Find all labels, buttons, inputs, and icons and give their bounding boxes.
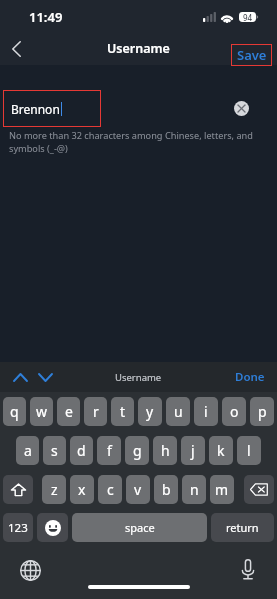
button[interactable]: Back [0,32,32,65]
staticText: t [120,402,126,421]
button[interactable]: Clear text [234,101,249,116]
button[interactable]: n [182,475,206,504]
staticText: l [247,441,251,460]
staticText: Username [115,371,162,384]
staticText: q [10,402,19,421]
button[interactable]: i [194,397,218,426]
button[interactable]: q [3,397,26,426]
button[interactable]: r [84,397,107,426]
button[interactable]: 123 [3,513,33,542]
button[interactable]: Previous field [7,364,33,390]
button[interactable]: m [210,475,234,504]
staticText: o [230,402,239,421]
button[interactable]: z [42,475,66,504]
button[interactable]: Save [231,44,272,66]
staticText: x [78,480,86,499]
button[interactable]: k [209,436,233,465]
staticText: j [191,441,195,460]
button[interactable]: d [70,436,93,465]
button[interactable]: y [138,397,162,426]
button[interactable]: return [211,513,274,542]
button[interactable]: f [97,436,121,465]
button[interactable]: space [72,513,207,542]
staticText: y [146,402,154,421]
staticText: d [77,441,86,460]
staticText: p [258,402,267,421]
button[interactable]: Dictate [234,556,261,583]
staticText: z [51,480,58,499]
staticText: s [51,441,58,460]
button[interactable]: x [70,475,94,504]
button[interactable]: e [57,397,80,426]
staticText: Username [107,40,170,57]
button[interactable]: Next keyboard [17,557,44,584]
button[interactable]: Brennon [3,90,101,127]
button[interactable]: a [16,436,39,465]
button[interactable]: o [222,397,246,426]
staticText: 123 [8,520,28,536]
staticText: m [215,480,229,499]
staticText: f [107,441,112,460]
staticText: c [107,480,114,499]
staticText: 94 [243,12,253,22]
button[interactable]: g [125,436,149,465]
button[interactable]: h [153,436,177,465]
staticText: b [162,480,171,499]
button[interactable]: v [126,475,150,504]
button[interactable]: w [30,397,53,426]
staticText: g [133,441,142,460]
staticText: r [93,402,99,421]
staticText: e [65,402,73,421]
staticText: No more than 32 characters among Chinese… [9,129,263,155]
staticText: k [217,441,225,460]
staticText: v [134,480,142,499]
button[interactable]: l [237,436,261,465]
button[interactable]: s [43,436,66,465]
button[interactable]: u [166,397,190,426]
staticText: n [190,480,199,499]
button[interactable]: p [250,397,274,426]
staticText: a [24,441,32,460]
button[interactable]: b [154,475,178,504]
staticText: Save [237,46,267,64]
button[interactable]: Next field [33,364,57,390]
staticText: space [125,520,155,535]
button[interactable]: Done [223,364,277,390]
staticText: h [161,441,170,460]
button[interactable]: Emoji [37,513,68,542]
staticText: 11:49 [29,8,63,26]
button[interactable]: c [98,475,122,504]
staticText: w [36,402,48,421]
staticText: u [174,402,183,421]
button[interactable]: j [181,436,205,465]
staticText: Done [235,369,265,385]
button[interactable]: t [111,397,134,426]
staticText: return [226,520,259,535]
button[interactable]: Backspace [244,475,274,504]
staticText: Brennon [11,101,60,117]
staticText: i [204,402,208,421]
button[interactable]: Shift [3,475,33,504]
